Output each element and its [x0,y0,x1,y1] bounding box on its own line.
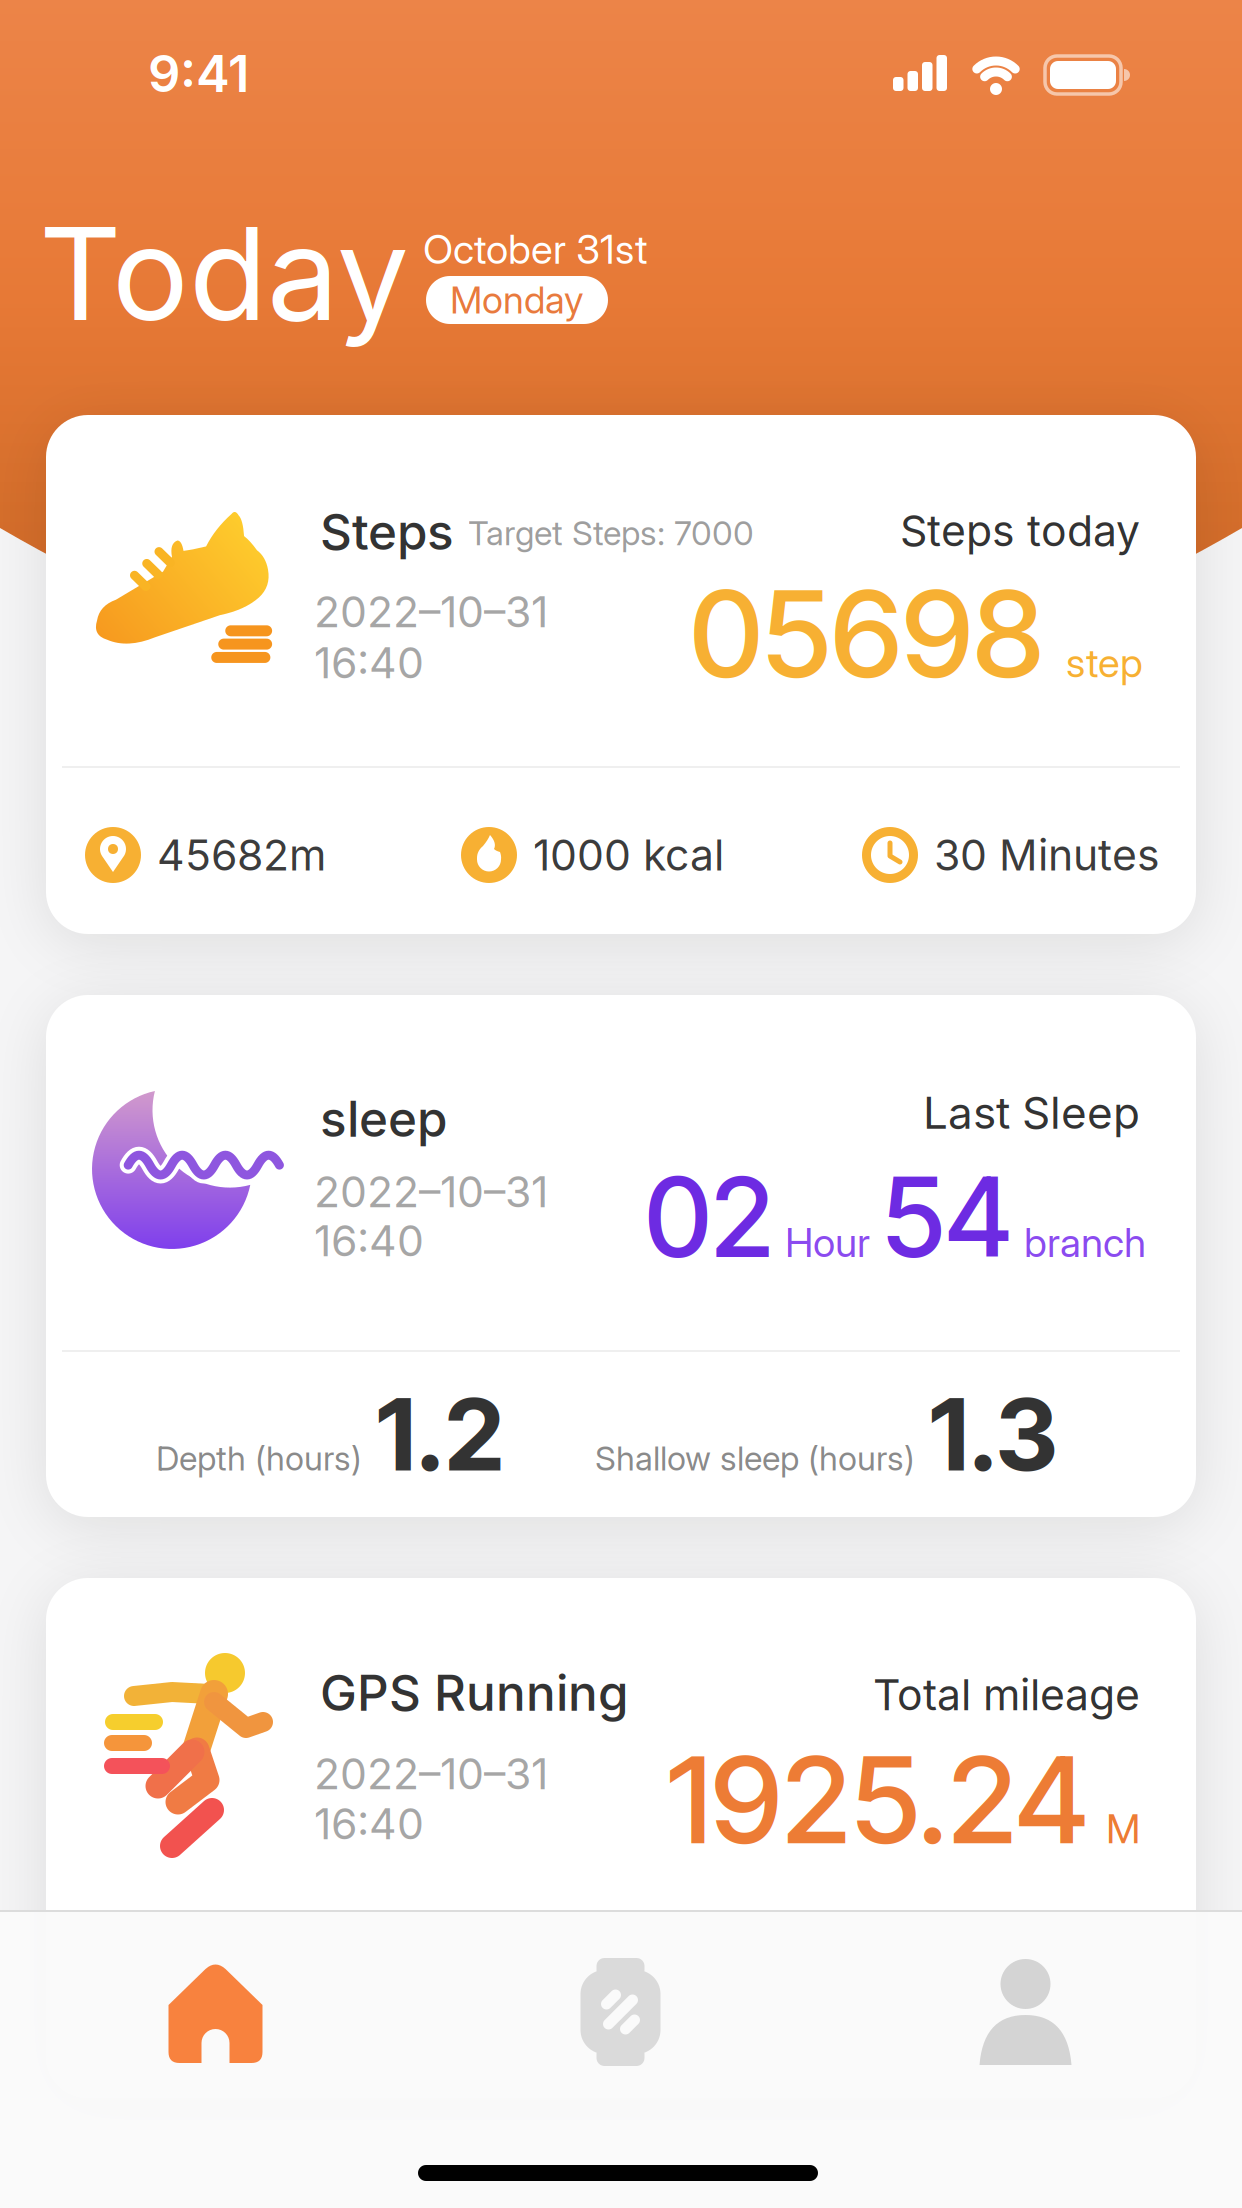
staticText: 16:40 [314,1215,424,1267]
staticText: 16:40 [314,1798,424,1850]
staticText: sleep [320,1089,447,1149]
staticText: Target Steps: 7000 [468,513,754,553]
staticText: 05698 [690,561,1044,706]
button[interactable]: Monday [426,276,608,324]
staticText: Steps today [900,505,1140,557]
staticText: 2022–10–31 [314,586,548,638]
staticText: 1000 kcal [533,829,724,881]
staticText: 16:40 [314,637,424,689]
staticText: Depth (hours) [156,1438,362,1479]
staticText: Hour [785,1218,870,1267]
staticText: 2022–10–31 [314,1166,548,1218]
staticText: branch [1024,1218,1146,1267]
staticText: Last Sleep [923,1086,1140,1139]
staticText: step [1066,638,1143,687]
staticText: 02 [645,1151,773,1283]
button[interactable]: Home [13,1922,418,2102]
staticText: GPS Running [320,1663,629,1723]
staticText: Monday [450,277,584,323]
staticText: 30 Minutes [934,829,1160,881]
staticText: Today [39,196,409,351]
staticText: 45682m [157,829,326,881]
button[interactable]: GPS Running [46,1578,1196,2098]
button[interactable]: Steps [46,415,1196,934]
button[interactable]: Device [418,1922,823,2102]
staticText: 1.3 [929,1375,1058,1494]
staticText: 54 [882,1151,1012,1283]
staticText: 9:41 [148,43,249,104]
staticText: October 31st [423,225,648,273]
staticText: 2022–10–31 [314,1748,548,1800]
staticText: Shallow sleep (hours) [595,1438,915,1479]
button[interactable]: Profile [823,1922,1228,2102]
staticText: M [1106,1804,1140,1853]
staticText: 1.2 [376,1375,504,1494]
staticText: Steps [320,502,454,562]
staticText: Total mileage [873,1669,1140,1721]
button[interactable]: sleep [46,995,1196,1517]
staticText: 1925.24 [667,1727,1088,1872]
